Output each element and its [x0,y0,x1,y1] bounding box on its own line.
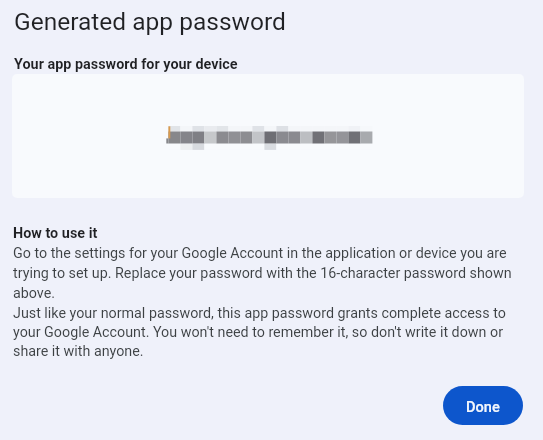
button[interactable]: Done [443,386,523,425]
staticText: Generated app password [14,7,286,36]
staticText: Just like your normal password, this app… [13,305,525,359]
staticText: Go to the settings for your Google Accou… [13,245,525,301]
staticText: How to use it [13,225,98,242]
staticText: Your app password for your device [14,56,238,73]
staticText: Done [466,398,500,415]
